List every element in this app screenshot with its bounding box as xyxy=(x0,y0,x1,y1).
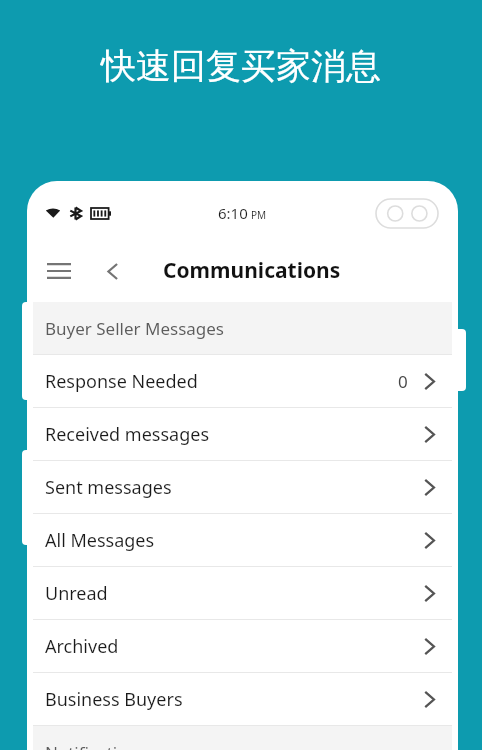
button[interactable]: Sent messages xyxy=(33,461,452,514)
staticText: All Messages xyxy=(45,528,155,553)
button[interactable]: Back xyxy=(91,250,133,292)
button[interactable]: Unread xyxy=(33,567,452,620)
button[interactable]: Response Needed xyxy=(33,355,452,408)
staticText: 快速回复买家消息 xyxy=(101,44,381,88)
button[interactable]: Business Buyers xyxy=(33,673,452,726)
staticText: PM xyxy=(251,208,267,222)
staticText: Buyer Seller Messages xyxy=(45,317,224,340)
staticText: Business Buyers xyxy=(45,687,183,712)
button[interactable]: Received messages xyxy=(33,408,452,461)
staticText: Response Needed xyxy=(45,369,198,394)
button[interactable]: Archived xyxy=(33,620,452,673)
staticText: Archived xyxy=(45,634,119,659)
staticText: 0 xyxy=(398,370,408,393)
staticText: Notifications xyxy=(45,741,147,750)
staticText: Received messages xyxy=(45,422,209,447)
staticText: 6:10 xyxy=(218,203,248,223)
staticText: Unread xyxy=(45,581,108,606)
staticText: Sent messages xyxy=(45,475,172,500)
button[interactable]: All Messages xyxy=(33,514,452,567)
staticText: Communications xyxy=(163,256,341,285)
button[interactable]: Menu xyxy=(37,249,81,293)
